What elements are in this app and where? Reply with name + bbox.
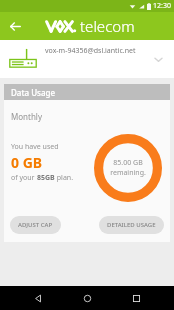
button[interactable]: Home	[76, 287, 98, 309]
staticText: vox-m-94356@dsl.iantic.net	[45, 46, 136, 56]
button[interactable]: Recent apps	[125, 287, 147, 309]
button[interactable]: vox-m-94356@dsl.iantic.net	[0, 40, 174, 78]
button[interactable]: DETAILED USAGE	[99, 216, 164, 234]
button[interactable]: ADJUST CAP	[10, 216, 61, 234]
staticText: Data Usage	[11, 87, 56, 98]
staticText: remaining.	[110, 168, 146, 178]
button[interactable]: Back	[4, 15, 26, 37]
staticText: 12:30	[153, 1, 171, 11]
staticText: telecom	[80, 16, 135, 36]
staticText: 0 GB	[11, 153, 43, 172]
staticText: Monthly	[11, 111, 43, 122]
staticText: of your	[11, 173, 37, 183]
staticText: plan.	[55, 173, 74, 183]
staticText: 85GB	[37, 173, 55, 183]
staticText: 85.00 GB	[113, 158, 143, 168]
staticText: You have used	[11, 142, 59, 152]
button[interactable]: Back	[27, 287, 49, 309]
staticText: DETAILED USAGE	[107, 221, 156, 229]
staticText: ADJUST CAP	[18, 221, 53, 229]
